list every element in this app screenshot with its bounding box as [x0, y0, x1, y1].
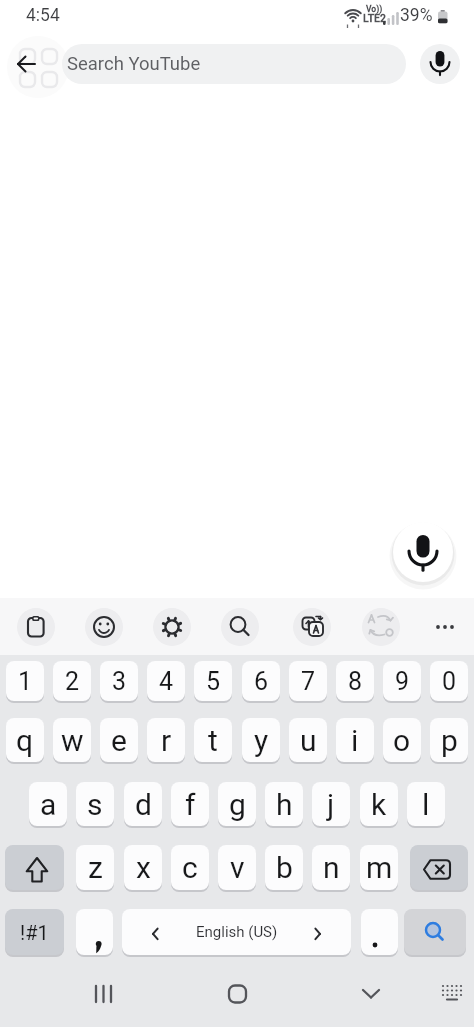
staticText: Vo)) — [366, 4, 383, 14]
staticText: 7 — [301, 667, 316, 696]
button[interactable]: !#1 — [5, 909, 64, 955]
staticText: d — [135, 787, 152, 822]
staticText: 0 — [442, 667, 457, 696]
button[interactable] — [17, 608, 55, 646]
button[interactable]: 8 — [336, 661, 374, 701]
button[interactable] — [404, 909, 466, 955]
staticText: r — [161, 723, 172, 758]
staticText: m — [366, 850, 393, 885]
button[interactable]: b — [265, 845, 303, 890]
button[interactable]: u — [289, 718, 327, 762]
staticText: 1 — [18, 667, 33, 696]
button[interactable]: z — [76, 845, 114, 890]
button[interactable]: g — [218, 782, 256, 826]
staticText: 39% — [400, 5, 433, 26]
staticText: w — [61, 723, 84, 758]
button[interactable]: 7 — [289, 661, 327, 701]
button[interactable]: q — [6, 718, 44, 762]
button[interactable]: 4 — [147, 661, 185, 701]
button[interactable] — [88, 978, 120, 1010]
staticText: y — [254, 723, 269, 758]
button[interactable]: c — [171, 845, 209, 890]
button[interactable]: m — [360, 845, 398, 890]
staticText: 3 — [112, 667, 127, 696]
button[interactable]: v — [218, 845, 256, 890]
button[interactable]: k — [360, 782, 398, 826]
staticText: u — [300, 723, 317, 758]
button[interactable]: p — [430, 718, 468, 762]
staticText: Search YouTube — [67, 53, 201, 75]
button[interactable]: l — [407, 782, 445, 826]
button[interactable]: j — [312, 782, 350, 826]
staticText: t — [208, 723, 218, 758]
button[interactable]: a — [29, 782, 67, 826]
staticText: LTE2 — [363, 12, 386, 24]
staticText: 2 — [65, 667, 80, 696]
staticText: z — [88, 850, 103, 885]
staticText: n — [323, 850, 340, 885]
button[interactable]: s — [76, 782, 114, 826]
button[interactable] — [221, 608, 259, 646]
staticText: b — [276, 850, 293, 885]
button[interactable]: 0 — [430, 661, 468, 701]
staticText: !#1 — [20, 921, 49, 944]
button[interactable]: i — [336, 718, 374, 762]
button[interactable] — [76, 909, 113, 955]
button[interactable]: r — [147, 718, 185, 762]
button[interactable] — [5, 845, 64, 890]
button[interactable] — [361, 909, 398, 955]
button[interactable]: e — [100, 718, 138, 762]
staticText: c — [182, 850, 198, 885]
button[interactable]: x — [124, 845, 162, 890]
staticText: q — [16, 723, 34, 758]
button[interactable] — [2, 42, 48, 88]
button[interactable]: y — [242, 718, 280, 762]
staticText: v — [230, 850, 245, 885]
staticText: h — [276, 787, 293, 822]
staticText: k — [371, 787, 387, 822]
button[interactable]: 9 — [383, 661, 421, 701]
button[interactable] — [410, 845, 468, 890]
button[interactable] — [355, 978, 387, 1010]
staticText: a — [40, 787, 57, 822]
staticText: 5 — [206, 667, 221, 696]
staticText: s — [87, 787, 103, 822]
staticText: 6 — [254, 667, 269, 696]
button[interactable]: n — [312, 845, 350, 890]
button[interactable] — [293, 608, 331, 646]
staticText: l — [422, 787, 430, 822]
button[interactable]: f — [171, 782, 209, 826]
button[interactable] — [362, 608, 400, 646]
staticText: x — [136, 850, 151, 885]
staticText: 9 — [395, 667, 410, 696]
button[interactable] — [420, 44, 460, 84]
button[interactable] — [436, 978, 468, 1010]
button[interactable]: 6 — [242, 661, 280, 701]
staticText: o — [393, 723, 411, 758]
staticText: g — [229, 787, 246, 822]
button[interactable]: 2 — [53, 661, 91, 701]
button[interactable] — [393, 522, 453, 582]
staticText: f — [185, 787, 196, 822]
button[interactable]: 5 — [194, 661, 232, 701]
button[interactable] — [221, 978, 253, 1010]
staticText: 8 — [348, 667, 363, 696]
staticText: e — [111, 723, 127, 758]
button[interactable]: 3 — [100, 661, 138, 701]
button[interactable] — [85, 608, 123, 646]
button[interactable]: o — [383, 718, 421, 762]
staticText: English (US) — [196, 923, 278, 941]
button[interactable]: d — [124, 782, 162, 826]
button[interactable] — [122, 909, 351, 955]
button[interactable]: Search YouTube — [62, 44, 406, 84]
staticText: p — [441, 723, 458, 758]
staticText: 4:54 — [26, 5, 60, 26]
button[interactable] — [153, 608, 191, 646]
staticText: 4 — [159, 667, 174, 696]
button[interactable]: h — [265, 782, 303, 826]
staticText: j — [327, 787, 335, 822]
button[interactable]: 1 — [6, 661, 44, 701]
button[interactable]: t — [194, 718, 232, 762]
button[interactable] — [426, 608, 464, 646]
button[interactable]: w — [53, 718, 91, 762]
